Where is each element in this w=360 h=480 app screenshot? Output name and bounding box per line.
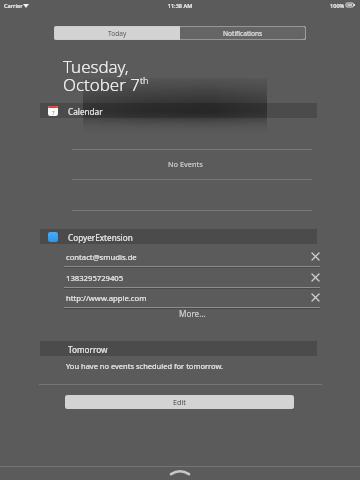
staticText: 1383295729405 <box>66 273 124 283</box>
staticText: More... <box>179 308 206 319</box>
button[interactable]: 1383295729405 <box>64 267 320 288</box>
staticText: CopyerExtension <box>68 232 133 243</box>
staticText: 7 <box>52 110 55 116</box>
button[interactable]: 7 <box>40 103 317 118</box>
staticText: contact@smudis.de <box>66 252 137 262</box>
staticText: th <box>140 74 149 86</box>
staticText: Calendar <box>68 106 103 117</box>
staticText: Carrier <box>4 2 23 10</box>
staticText: Today <box>108 29 127 38</box>
button[interactable]: Tomorrow <box>40 341 317 356</box>
button[interactable]: Notifications <box>180 26 306 40</box>
staticText: Tomorrow <box>68 344 108 355</box>
button[interactable]: CopyerExtension <box>40 229 317 244</box>
button[interactable]: Remove <box>308 290 322 304</box>
staticText: October 7 <box>63 73 140 96</box>
button[interactable]: contact@smudis.de <box>64 246 320 267</box>
staticText: You have no events scheduled for tomorro… <box>66 361 223 371</box>
button[interactable]: Remove <box>308 249 322 263</box>
staticText: http://www.apple.com <box>66 293 147 303</box>
button[interactable]: Remove <box>308 270 322 284</box>
staticText: 11:38 AM <box>0 2 360 10</box>
button[interactable]: Today <box>54 26 180 40</box>
staticText: Notifications <box>223 29 263 38</box>
staticText: No Events <box>168 159 203 169</box>
staticText: 100% <box>330 2 345 10</box>
staticText: Tuesday, <box>63 55 129 78</box>
button[interactable]: Edit <box>65 395 294 409</box>
button[interactable]: Close notification center <box>168 466 192 477</box>
staticText: Edit <box>173 397 186 407</box>
button[interactable]: http://www.apple.com <box>64 287 320 308</box>
